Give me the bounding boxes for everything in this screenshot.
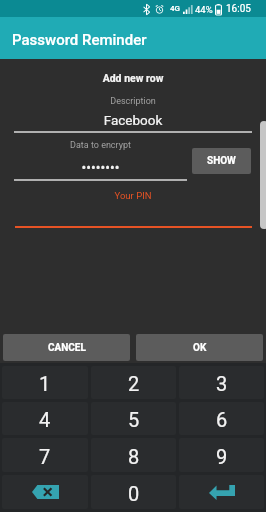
button[interactable]: 6 bbox=[179, 402, 264, 435]
button[interactable]: SHOW bbox=[192, 148, 251, 174]
staticText: SHOW bbox=[207, 155, 236, 167]
staticText: •••••••• bbox=[14, 160, 187, 176]
button[interactable]: 5 bbox=[91, 402, 176, 435]
staticText: 2 bbox=[128, 372, 140, 395]
staticText: Add new row bbox=[0, 72, 266, 84]
staticText: Password Reminder bbox=[12, 31, 147, 49]
button[interactable]: 4 bbox=[2, 402, 88, 435]
staticText: 3 bbox=[216, 372, 228, 395]
staticText: 4 bbox=[39, 408, 51, 431]
staticText: 6 bbox=[216, 408, 228, 431]
button[interactable]: 8 bbox=[91, 438, 176, 472]
staticText: CANCEL bbox=[48, 342, 86, 354]
button[interactable]: 3 bbox=[179, 366, 264, 399]
staticText: 44% bbox=[195, 4, 213, 15]
button[interactable]: CANCEL bbox=[3, 334, 130, 361]
staticText: Description bbox=[0, 96, 266, 107]
button[interactable]: 1 bbox=[2, 366, 88, 399]
button[interactable]: 9 bbox=[179, 438, 264, 472]
staticText: Data to encrypt bbox=[14, 140, 187, 151]
staticText: 16:05 bbox=[226, 3, 251, 15]
button[interactable]: Backspace bbox=[2, 475, 88, 509]
button[interactable]: 7 bbox=[2, 438, 88, 472]
staticText: 4G bbox=[170, 4, 180, 13]
staticText: 9 bbox=[216, 445, 228, 468]
staticText: 1 bbox=[39, 372, 51, 395]
staticText: 5 bbox=[128, 408, 140, 431]
staticText: Facebook bbox=[0, 112, 266, 128]
staticText: 0 bbox=[128, 482, 140, 505]
staticText: OK bbox=[193, 342, 207, 354]
button[interactable]: Enter bbox=[179, 475, 264, 509]
staticText: 8 bbox=[128, 445, 140, 468]
staticText: 7 bbox=[39, 445, 51, 468]
staticText: Your PIN bbox=[0, 190, 266, 201]
button[interactable]: 2 bbox=[91, 366, 176, 399]
button[interactable]: OK bbox=[136, 334, 263, 361]
button[interactable]: 0 bbox=[91, 475, 176, 509]
